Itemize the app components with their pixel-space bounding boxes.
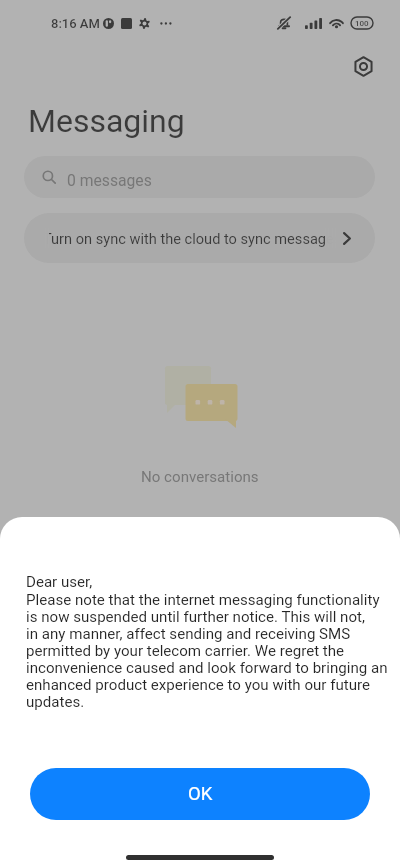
- staticText: OK: [188, 783, 213, 805]
- staticText: Dear user, Please note that the internet…: [26, 573, 388, 710]
- button[interactable]: Turn on sync with the cloud to sync mess…: [24, 213, 375, 263]
- staticText: 100: [355, 19, 369, 28]
- staticText: 0 messages: [67, 171, 152, 189]
- button[interactable]: OK: [30, 768, 370, 820]
- staticText: 8:16 AM: [51, 16, 100, 31]
- staticText: Turn on sync with the cloud to sync mess…: [43, 230, 338, 247]
- staticText: No conversations: [141, 468, 259, 486]
- staticText: Messaging: [28, 102, 185, 140]
- button[interactable]: Settings: [344, 48, 382, 86]
- button[interactable]: Search messages: [24, 156, 375, 198]
